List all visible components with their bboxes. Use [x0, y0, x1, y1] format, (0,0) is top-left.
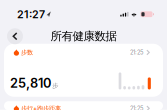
staticText: 步 [52, 82, 58, 90]
staticText: 步数 [21, 49, 33, 56]
staticText: 21:25 [130, 49, 143, 56]
staticText: 所有健康数据 [50, 29, 116, 43]
staticText: 21:25 [130, 105, 143, 110]
button[interactable]: 步数 [4, 44, 163, 97]
button[interactable]: Back [5, 26, 25, 46]
staticText: 25,810 [10, 75, 51, 91]
button[interactable]: 步行+跑步距离 [4, 101, 163, 110]
staticText: 步行+跑步距离 [21, 104, 61, 110]
staticText: 21:27 [17, 8, 45, 21]
